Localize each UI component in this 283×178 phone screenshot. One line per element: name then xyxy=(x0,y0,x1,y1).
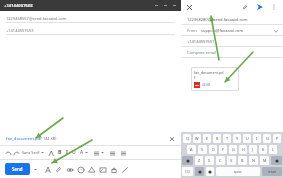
button[interactable]: F xyxy=(219,145,227,154)
button[interactable]: U xyxy=(243,134,251,143)
button[interactable]: X xyxy=(205,156,214,165)
staticText: f xyxy=(194,75,196,80)
button[interactable]: Font size xyxy=(47,149,55,157)
staticText: V xyxy=(230,158,233,163)
button[interactable]: fax_document.pd xyxy=(191,67,239,91)
button[interactable]: Drive xyxy=(86,164,97,175)
button[interactable]: Emoji xyxy=(75,164,86,175)
button[interactable]: Confidential mode xyxy=(108,164,119,175)
staticText: J xyxy=(252,147,254,152)
staticText: P xyxy=(276,136,279,141)
staticText: 1223468567@send.faxaaiol.com xyxy=(6,16,67,21)
staticText: Q xyxy=(186,136,189,141)
button[interactable]: I xyxy=(66,149,68,156)
staticText: E xyxy=(206,136,209,141)
staticText: A xyxy=(190,147,193,152)
staticText: K xyxy=(262,147,265,152)
button[interactable]: Minimize xyxy=(154,3,159,8)
button[interactable]: Close xyxy=(172,3,177,8)
staticText: +14144557653 xyxy=(6,28,34,33)
staticText: F xyxy=(222,147,224,152)
staticText: Send xyxy=(12,166,23,172)
button[interactable]: L xyxy=(269,145,277,154)
button[interactable]: N xyxy=(249,156,258,165)
staticText: support@faxaaiol.com xyxy=(201,28,244,33)
staticText: PDF xyxy=(195,84,200,87)
button[interactable]: O xyxy=(263,134,271,143)
button[interactable]: More options xyxy=(269,2,279,12)
staticText: X xyxy=(208,158,211,163)
button[interactable]: space xyxy=(216,167,260,176)
staticText: N xyxy=(252,158,255,163)
button[interactable]: B xyxy=(58,149,62,156)
button[interactable]: E xyxy=(203,134,211,143)
button[interactable]: Send options xyxy=(32,166,38,172)
staticText: 44 KB xyxy=(202,83,211,87)
button[interactable]: V xyxy=(227,156,236,165)
button[interactable]: A xyxy=(187,145,196,154)
staticText: H xyxy=(242,147,245,152)
button[interactable]: W xyxy=(193,134,201,143)
button[interactable]: I xyxy=(253,134,261,143)
button[interactable]: K xyxy=(259,145,267,154)
staticText: Sans Serif xyxy=(22,150,40,155)
button[interactable]: Attach file xyxy=(240,2,250,12)
button[interactable]: Formatting xyxy=(42,164,53,175)
button[interactable]: Send xyxy=(5,163,30,175)
staticText: return xyxy=(268,170,277,174)
button[interactable]: A xyxy=(80,149,84,156)
staticText: S xyxy=(201,147,204,152)
button[interactable]: Align xyxy=(92,149,100,157)
button[interactable]: T xyxy=(223,134,231,143)
button[interactable]: List xyxy=(108,149,116,157)
button[interactable]: Z xyxy=(195,156,203,165)
staticText: 123 xyxy=(185,170,190,174)
button[interactable]: 123 xyxy=(182,167,193,176)
button[interactable]: Redo xyxy=(12,149,20,157)
button[interactable]: Close xyxy=(185,3,194,12)
staticText: B xyxy=(241,158,244,163)
staticText: Compose email xyxy=(187,50,217,55)
button[interactable]: B xyxy=(238,156,247,165)
button[interactable]: Send xyxy=(255,2,265,12)
button[interactable]: Y xyxy=(233,134,241,143)
staticText: U xyxy=(246,136,249,141)
button[interactable]: J xyxy=(249,145,257,154)
button[interactable]: Attach file xyxy=(53,164,64,175)
button[interactable]: Maximize xyxy=(163,3,168,8)
button[interactable]: Insert link xyxy=(64,164,75,175)
staticText: +14144557651 xyxy=(187,39,215,44)
button[interactable]: C xyxy=(216,156,225,165)
button[interactable]: Shift xyxy=(182,156,193,165)
staticText: fax_document.pdf xyxy=(6,136,42,142)
button[interactable]: Insert photo xyxy=(97,164,108,175)
button[interactable]: D xyxy=(209,145,217,154)
staticText: I xyxy=(256,136,258,141)
staticText: W xyxy=(195,136,199,141)
button[interactable]: H xyxy=(239,145,247,154)
button[interactable]: Numbered list xyxy=(119,149,127,157)
button[interactable]: return xyxy=(262,167,282,176)
button[interactable]: Emoji xyxy=(195,167,204,176)
button[interactable]: U xyxy=(72,149,76,156)
staticText: G xyxy=(232,147,235,152)
button[interactable]: R xyxy=(213,134,221,143)
staticText: From xyxy=(187,28,197,33)
staticText: +14144007603 xyxy=(4,3,33,9)
button[interactable]: M xyxy=(260,156,269,165)
button[interactable]: Undo xyxy=(4,149,12,157)
staticText: (44 KB) xyxy=(44,136,57,141)
button[interactable]: Remove attachment xyxy=(168,135,175,142)
button[interactable]: Signature xyxy=(119,164,130,175)
button[interactable]: S xyxy=(198,145,207,154)
button[interactable]: G xyxy=(229,145,237,154)
button[interactable]: Voice input xyxy=(206,167,214,176)
staticText: fax_document.pd xyxy=(194,70,224,75)
staticText: C xyxy=(219,158,222,163)
staticText: space xyxy=(234,170,242,174)
staticText: O xyxy=(266,136,269,141)
button[interactable]: Q xyxy=(183,134,191,143)
staticText: Y xyxy=(236,136,239,141)
button[interactable]: P xyxy=(273,134,281,143)
button[interactable]: Backspace xyxy=(271,156,282,165)
